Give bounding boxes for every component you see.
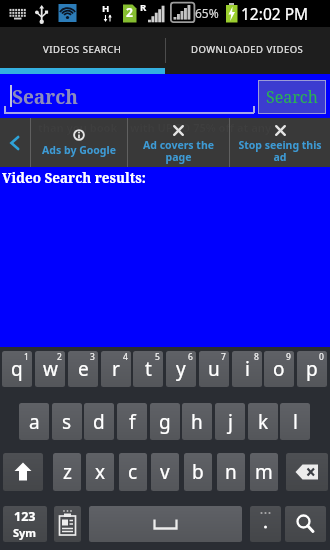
staticText: q bbox=[11, 356, 23, 382]
button[interactable]: Symbols bbox=[3, 506, 47, 542]
staticText: n bbox=[225, 459, 237, 485]
staticText: DOWNLOADED VIDEOS bbox=[191, 43, 304, 56]
staticText: Ad covers the page bbox=[132, 138, 225, 164]
staticText: 7 bbox=[221, 351, 226, 363]
staticText: i bbox=[245, 356, 250, 382]
staticText: 2 bbox=[57, 351, 62, 363]
staticText: v bbox=[160, 459, 170, 485]
staticText: b bbox=[192, 459, 204, 485]
staticText: Search bbox=[266, 86, 318, 108]
staticText: o bbox=[273, 356, 285, 382]
staticText: 123 bbox=[14, 508, 36, 525]
button[interactable]: Ads by Google bbox=[31, 118, 127, 167]
button[interactable]: p bbox=[297, 351, 327, 387]
button[interactable]: Search bbox=[259, 81, 325, 113]
button[interactable]: Back bbox=[0, 118, 30, 167]
staticText: 12:02 PM bbox=[241, 3, 309, 24]
staticText: 6 bbox=[188, 351, 193, 363]
button[interactable]: Backspace bbox=[286, 453, 328, 491]
staticText: h bbox=[191, 409, 203, 435]
button[interactable]: n bbox=[217, 453, 245, 491]
staticText: j bbox=[228, 409, 233, 435]
button[interactable]: f bbox=[117, 403, 147, 440]
staticText: t bbox=[145, 356, 152, 382]
staticText: than you book bbox=[38, 120, 118, 135]
staticText: 9 bbox=[286, 351, 291, 363]
staticText: 1 bbox=[24, 351, 29, 363]
button[interactable]: g bbox=[150, 403, 180, 440]
staticText: Search bbox=[12, 84, 78, 110]
staticText: e bbox=[78, 356, 89, 382]
staticText: Stop seeing this ad bbox=[234, 138, 326, 164]
staticText: 5 bbox=[155, 351, 160, 363]
button[interactable]: i bbox=[232, 351, 262, 387]
button[interactable]: w bbox=[35, 351, 65, 387]
button[interactable]: v bbox=[151, 453, 179, 491]
button[interactable]: m bbox=[250, 453, 278, 491]
button[interactable]: s bbox=[52, 403, 82, 440]
staticText: s bbox=[62, 409, 72, 435]
button[interactable]: c bbox=[119, 453, 147, 491]
staticText: z bbox=[63, 459, 72, 485]
staticText: 8 bbox=[254, 351, 259, 363]
staticText: w bbox=[43, 356, 58, 382]
staticText: l bbox=[293, 409, 298, 435]
button[interactable]: k bbox=[248, 403, 278, 440]
button[interactable]: j bbox=[215, 403, 245, 440]
staticText: f bbox=[129, 409, 136, 435]
staticText: 3 bbox=[90, 351, 95, 363]
button[interactable]: e bbox=[68, 351, 98, 387]
button[interactable]: q bbox=[2, 351, 32, 387]
button[interactable]: DOWNLOADED VIDEOS bbox=[165, 26, 330, 73]
staticText: c bbox=[128, 459, 138, 485]
button[interactable]: u bbox=[199, 351, 229, 387]
staticText: a bbox=[29, 409, 40, 435]
button[interactable]: VIDEOS SEARCH bbox=[0, 26, 165, 73]
staticText: H bbox=[102, 2, 110, 15]
button[interactable]: Search bbox=[285, 506, 326, 542]
staticText: m bbox=[255, 459, 273, 485]
button[interactable]: t bbox=[133, 351, 163, 387]
staticText: R bbox=[140, 1, 147, 14]
staticText: d bbox=[93, 409, 105, 435]
button[interactable]: h bbox=[182, 403, 212, 440]
button[interactable]: Stop seeing this ad bbox=[230, 118, 330, 167]
staticText: Sym bbox=[13, 525, 37, 540]
staticText: y bbox=[176, 356, 186, 382]
button[interactable]: x bbox=[86, 453, 114, 491]
button[interactable]: a bbox=[19, 403, 49, 440]
staticText: 65% bbox=[195, 5, 219, 21]
staticText: VIDEOS SEARCH bbox=[43, 43, 122, 56]
staticText: 0 bbox=[319, 351, 324, 363]
staticText: r bbox=[112, 356, 120, 382]
staticText: 4 bbox=[123, 351, 128, 363]
staticText: Ads by Google bbox=[42, 143, 116, 157]
staticText: g bbox=[159, 409, 171, 435]
button[interactable]: o bbox=[264, 351, 294, 387]
button[interactable]: Period bbox=[250, 506, 281, 542]
button[interactable]: y bbox=[166, 351, 196, 387]
button[interactable]: Clipboard bbox=[54, 506, 81, 542]
staticText: u bbox=[208, 356, 220, 382]
button[interactable]: b bbox=[184, 453, 212, 491]
button[interactable]: Space bbox=[89, 506, 242, 542]
button[interactable]: z bbox=[53, 453, 81, 491]
button[interactable]: Shift bbox=[3, 453, 43, 491]
button[interactable]: l bbox=[280, 403, 310, 440]
staticText: k bbox=[258, 409, 269, 435]
staticText: with UP TO 75% off bbox=[130, 120, 234, 135]
button[interactable]: r bbox=[101, 351, 131, 387]
staticText: Video Search results: bbox=[2, 169, 146, 187]
staticText: p bbox=[306, 356, 318, 382]
button[interactable]: d bbox=[84, 403, 114, 440]
staticText: 2 bbox=[126, 4, 133, 20]
staticText: x bbox=[95, 459, 106, 485]
button[interactable]: Ad covers the page bbox=[128, 118, 229, 167]
